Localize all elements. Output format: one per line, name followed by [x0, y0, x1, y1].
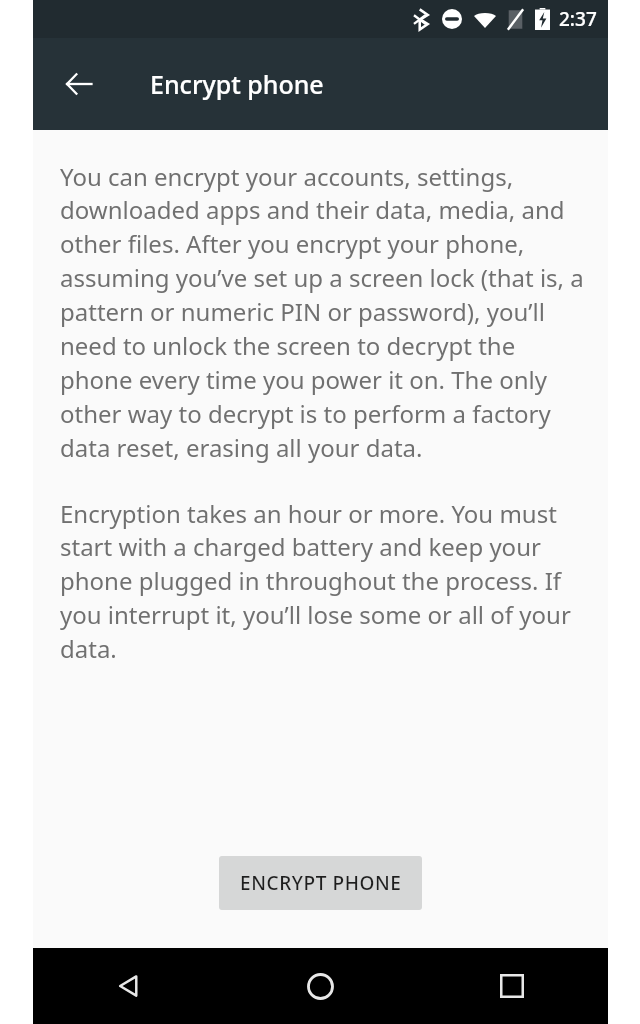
button[interactable]: Recent apps	[416, 948, 608, 1024]
button[interactable]: ENCRYPT PHONE	[219, 856, 422, 910]
staticText: ENCRYPT PHONE	[240, 870, 402, 896]
button[interactable]: Home	[224, 948, 416, 1024]
staticText: 2:37	[559, 6, 597, 32]
button[interactable]: Back	[33, 948, 224, 1024]
button[interactable]: Back	[55, 60, 103, 108]
staticText: Encryption takes an hour or more. You mu…	[60, 497, 590, 665]
staticText: You can encrypt your accounts, settings,…	[60, 160, 590, 464]
staticText: Encrypt phone	[150, 67, 324, 101]
